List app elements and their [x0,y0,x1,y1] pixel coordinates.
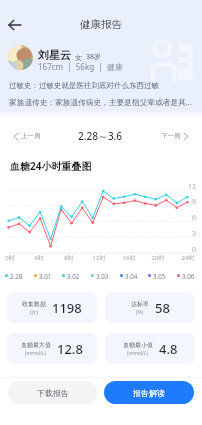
staticText: 刘星云 [38,48,71,62]
staticText: 3.03 [96,272,109,280]
button[interactable]: 收集数据 [7,292,97,323]
staticText: 0 [182,245,196,255]
staticText: 3.01 [39,272,52,280]
staticText: 24时 [178,254,198,262]
staticText: (%) [136,309,144,316]
staticText: 2.28 [10,272,23,280]
staticText: 2.28～3.6 [78,129,123,143]
button[interactable]: Back [2,12,28,38]
staticText: 家族遗传史：家族遗传病史，主要是指父辈或者是其... [9,97,192,108]
staticText: 下一周 [161,132,181,140]
staticText: 58 [155,299,170,317]
button[interactable]: 3.03 [91,271,109,280]
button[interactable]: 3.06 [177,271,195,280]
staticText: 健康报告 [0,18,202,31]
staticText: 3 [182,229,196,239]
button[interactable]: 3.05 [148,271,166,280]
button[interactable]: 上一周 [11,129,44,143]
staticText: 12时 [89,254,109,262]
staticText: (mmol/L) [25,350,47,357]
staticText: 12 [182,182,196,192]
staticText: 9 [182,197,196,207]
button[interactable]: 达标率 [105,292,195,323]
staticText: 16时 [119,254,139,262]
staticText: (mmol/L) [127,350,149,357]
button[interactable]: 下载报告 [8,381,97,404]
button[interactable]: 3.01 [34,271,52,280]
button[interactable]: 2.28 [5,271,23,280]
staticText: 女 [75,53,82,62]
button[interactable]: 血糖最小值 [105,333,195,364]
staticText: 167cm | 56kg | 健康 [38,61,123,72]
staticText: 6 [182,213,196,223]
staticText: 3.04 [125,272,138,280]
staticText: (次) [30,309,39,316]
staticText: 3.05 [153,272,166,280]
staticText: 3.06 [182,272,195,280]
staticText: 报告解读 [133,388,165,398]
staticText: 12.8 [57,340,83,358]
button[interactable]: 下一周 [158,129,191,143]
staticText: 38岁 [86,52,102,62]
staticText: 达标率 [131,300,149,308]
staticText: 8时 [59,254,79,262]
staticText: 下载报告 [37,388,69,398]
button[interactable]: 报告解读 [104,381,194,404]
staticText: 4时 [29,254,49,262]
staticText: 4.8 [159,340,178,358]
staticText: 血糖最大值 [21,341,51,349]
staticText: 上一周 [21,132,41,140]
staticText: 3.02 [67,272,80,280]
staticText: 血糖24小时重叠图 [10,159,92,173]
staticText: 20时 [148,254,168,262]
staticText: 过敏史：过敏史就是医往到底对什么东西过敏 [9,81,159,90]
staticText: 血糖最小值 [123,341,153,349]
button[interactable]: 血糖最大值 [7,333,97,364]
button[interactable]: 3.02 [62,271,80,280]
button[interactable]: 3.04 [120,271,138,280]
staticText: 收集数据 [22,300,46,308]
staticText: 1198 [52,299,82,317]
staticText: 0时 [0,254,20,262]
